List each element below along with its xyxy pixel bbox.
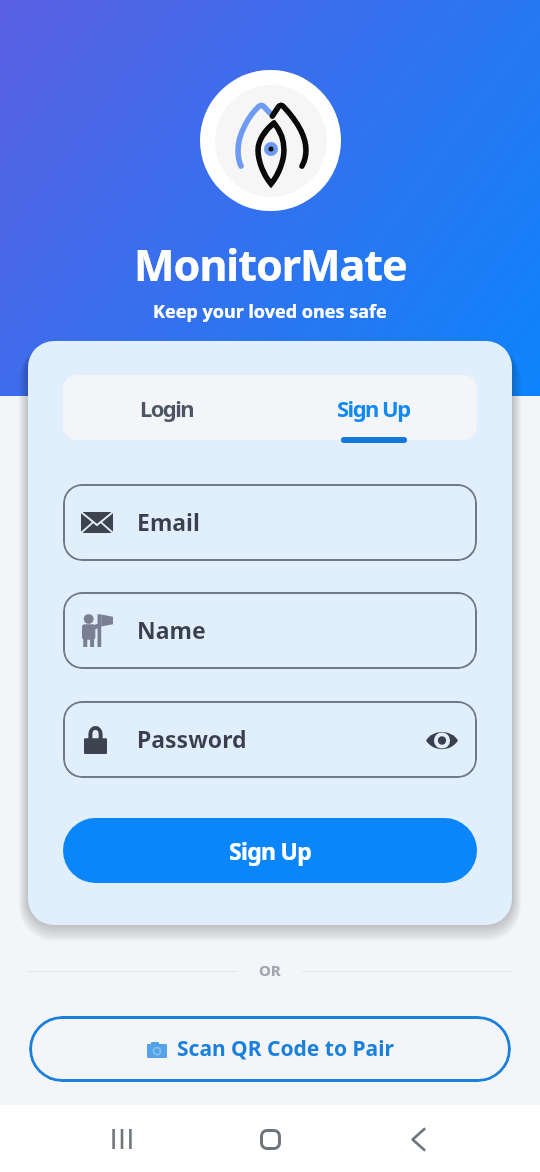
button[interactable]: Login [63,375,270,440]
staticText: Scan QR Code to Pair [177,1034,394,1063]
staticText: Password [137,723,247,754]
button[interactable]: Sign Up [270,375,477,440]
staticText: Login [140,393,193,423]
button[interactable]: Name [63,592,477,669]
button[interactable]: Scan QR Code to Pair [29,1016,511,1082]
staticText: MonitorMate [134,235,407,294]
button[interactable]: Email [63,484,477,561]
staticText: Email [137,506,200,537]
staticText: Sign Up [337,393,410,423]
staticText: Keep your loved ones safe [153,299,387,324]
button[interactable]: Recent apps [96,1113,148,1165]
staticText: Name [137,614,206,645]
staticText: Sign Up [229,835,312,866]
button[interactable]: Show password [423,721,461,759]
button[interactable]: Home [244,1113,296,1165]
button[interactable]: Password [63,701,477,778]
button[interactable]: Sign Up [63,818,477,883]
button[interactable]: Back [392,1113,444,1165]
staticText: OR [259,960,281,978]
